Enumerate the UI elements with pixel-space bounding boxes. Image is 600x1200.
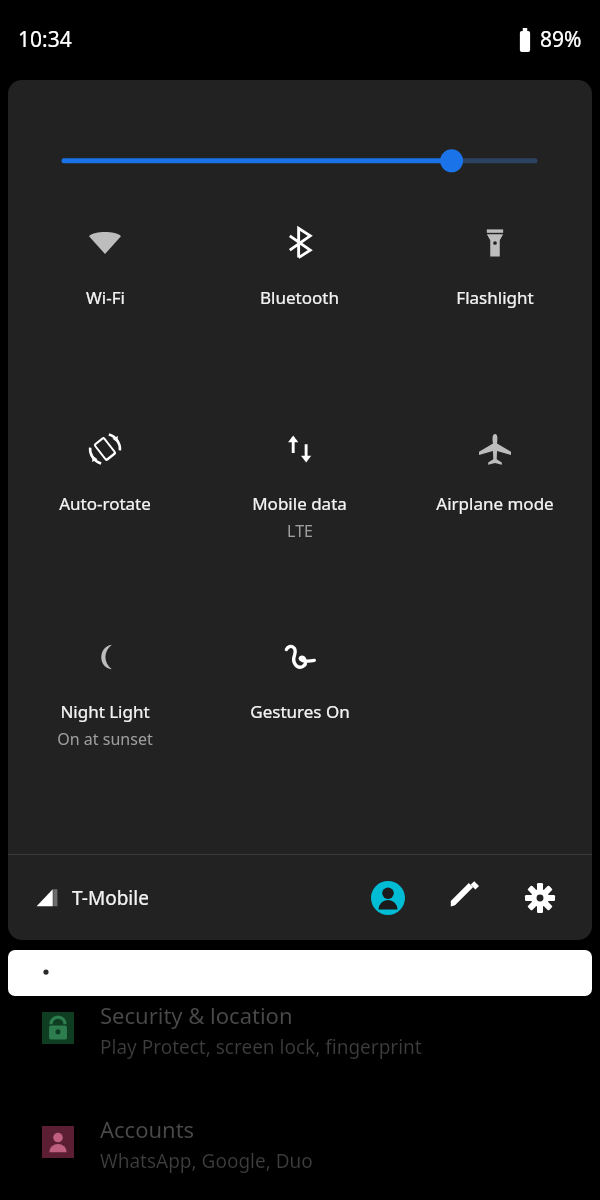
button[interactable]: Security & location [0,1000,600,1100]
staticText: Play Protect, screen lock, fingerprint [100,1034,422,1060]
staticText: WhatsApp, Google, Duo [100,1148,313,1174]
button[interactable]: Brightness [8,80,592,162]
staticText: Wi-Fi [86,286,125,309]
button[interactable]: Gestures On [202,578,397,786]
button[interactable]: Auto-rotate [8,370,202,578]
staticText: Bluetooth [260,286,339,309]
button[interactable] [8,950,592,996]
staticText: 10:34 [18,25,72,54]
staticText: Auto-rotate [59,492,151,515]
button[interactable]: Accounts [0,1114,600,1200]
staticText: LTE [287,520,313,542]
staticText: Accounts [100,1114,195,1144]
staticText: Gestures On [250,700,350,723]
button[interactable]: Night Light [8,578,202,786]
staticText: Night Light [60,700,150,723]
button[interactable]: T-Mobile [34,885,149,911]
button[interactable]: Flashlight [397,162,592,370]
staticText: Airplane mode [436,492,554,515]
staticText: Flashlight [456,286,534,309]
button[interactable]: Wi-Fi [8,162,202,370]
staticText: Security & location [100,1000,293,1030]
button[interactable]: User [362,872,414,924]
button[interactable]: Airplane mode [397,370,592,578]
staticText: On at sunset [57,728,153,750]
staticText: 89% [540,25,582,54]
button[interactable]: Edit [438,872,490,924]
button[interactable]: Bluetooth [202,162,397,370]
button[interactable]: Mobile data [202,370,397,578]
staticText: Mobile data [252,492,347,515]
button[interactable]: Settings [514,872,566,924]
staticText: T-Mobile [72,885,149,911]
